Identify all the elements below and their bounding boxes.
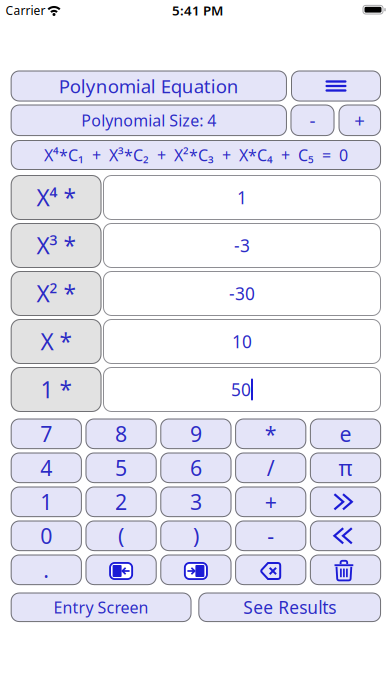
staticText: 3	[190, 488, 202, 516]
staticText: 1 *	[41, 374, 72, 404]
staticText: )	[193, 522, 199, 550]
staticText: See Results	[243, 596, 336, 619]
staticText: *	[265, 420, 277, 448]
staticText: 5:41 PM	[172, 1, 223, 19]
staticText: 9	[190, 420, 202, 448]
staticText: X⁴ *	[37, 182, 76, 212]
staticText: +	[265, 488, 277, 516]
staticText: 50	[231, 378, 251, 401]
staticText: e	[339, 420, 351, 448]
staticText: X² *	[37, 278, 76, 308]
staticText: 6	[190, 454, 202, 482]
staticText: 7	[40, 420, 52, 448]
staticText: (	[118, 522, 124, 550]
staticText: 4	[40, 454, 52, 482]
staticText: 10	[232, 330, 252, 353]
staticText: 5	[115, 454, 127, 482]
staticText: π	[338, 454, 352, 482]
staticText: 1	[40, 488, 52, 516]
staticText: X³ *	[37, 230, 76, 260]
staticText: -3	[234, 234, 250, 257]
staticText: 8	[115, 420, 127, 448]
staticText: 2	[115, 488, 127, 516]
staticText: -30	[229, 282, 255, 305]
staticText: Polynomial Equation	[59, 74, 239, 98]
staticText: Entry Screen	[54, 597, 149, 618]
staticText: Carrier	[5, 2, 45, 18]
staticText: +	[354, 108, 365, 133]
staticText: Polynomial Size: 4	[81, 110, 216, 131]
staticText: 0	[40, 522, 52, 550]
staticText: 1	[237, 186, 247, 209]
staticText: /	[267, 454, 275, 482]
staticText: .	[43, 556, 49, 584]
staticText: X⁴*C₁ + X³*C₂ + X²*C₃ + X*C₄ + C₅ = 0	[44, 144, 348, 166]
staticText: -	[309, 108, 315, 133]
staticText: -	[267, 522, 274, 550]
staticText: X *	[41, 326, 72, 356]
